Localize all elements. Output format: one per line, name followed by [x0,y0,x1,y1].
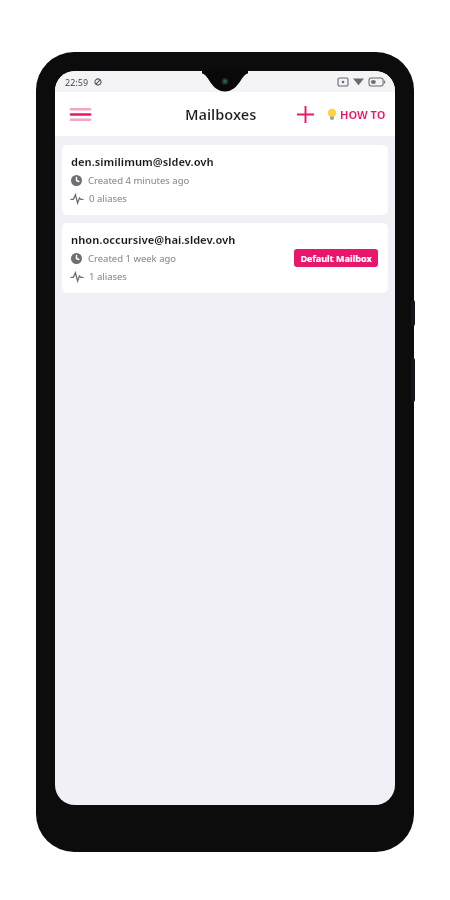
staticText: Default Mailbox [300,252,372,264]
staticText: nhon.occursive@hai.sldev.ovh [71,232,236,247]
button[interactable]: Create mailbox [289,98,321,130]
staticText: Mailboxes [185,104,257,124]
staticText: den.similimum@sldev.ovh [71,154,214,169]
staticText: Created 1 week ago [88,252,177,265]
button[interactable]: Default Mailbox [294,249,378,267]
staticText: 1 aliases [89,270,127,283]
button[interactable]: HOW TO [324,101,389,128]
button[interactable]: den.similimum@sldev.ovh [62,145,388,215]
staticText: 0 aliases [89,192,127,205]
button[interactable]: Open navigation menu [63,97,97,131]
staticText: 22:59 [65,76,89,88]
staticText: HOW TO [340,107,386,122]
staticText: Created 4 minutes ago [88,174,190,187]
button[interactable]: nhon.occursive@hai.sldev.ovh [62,223,388,293]
